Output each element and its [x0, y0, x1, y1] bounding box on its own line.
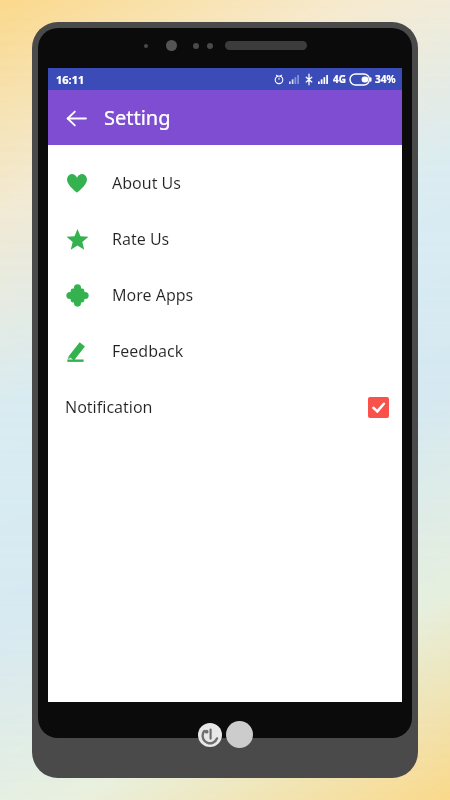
staticText: More Apps [112, 284, 194, 306]
button[interactable]: Back [58, 100, 94, 136]
other: Notification enabled [368, 397, 389, 418]
button[interactable]: Rate Us [48, 211, 402, 267]
staticText: 4G [333, 72, 346, 86]
staticText: Feedback [112, 340, 184, 362]
button[interactable]: About Us [48, 155, 402, 211]
staticText: 16:11 [56, 72, 85, 87]
staticText: Rate Us [112, 228, 170, 250]
staticText: About Us [112, 172, 181, 194]
button[interactable]: Notification [48, 379, 402, 435]
staticText: Notification [65, 396, 153, 418]
staticText: Setting [104, 104, 171, 131]
staticText: 34% [375, 72, 396, 86]
button[interactable]: More Apps [48, 267, 402, 323]
button[interactable]: Feedback [48, 323, 402, 379]
